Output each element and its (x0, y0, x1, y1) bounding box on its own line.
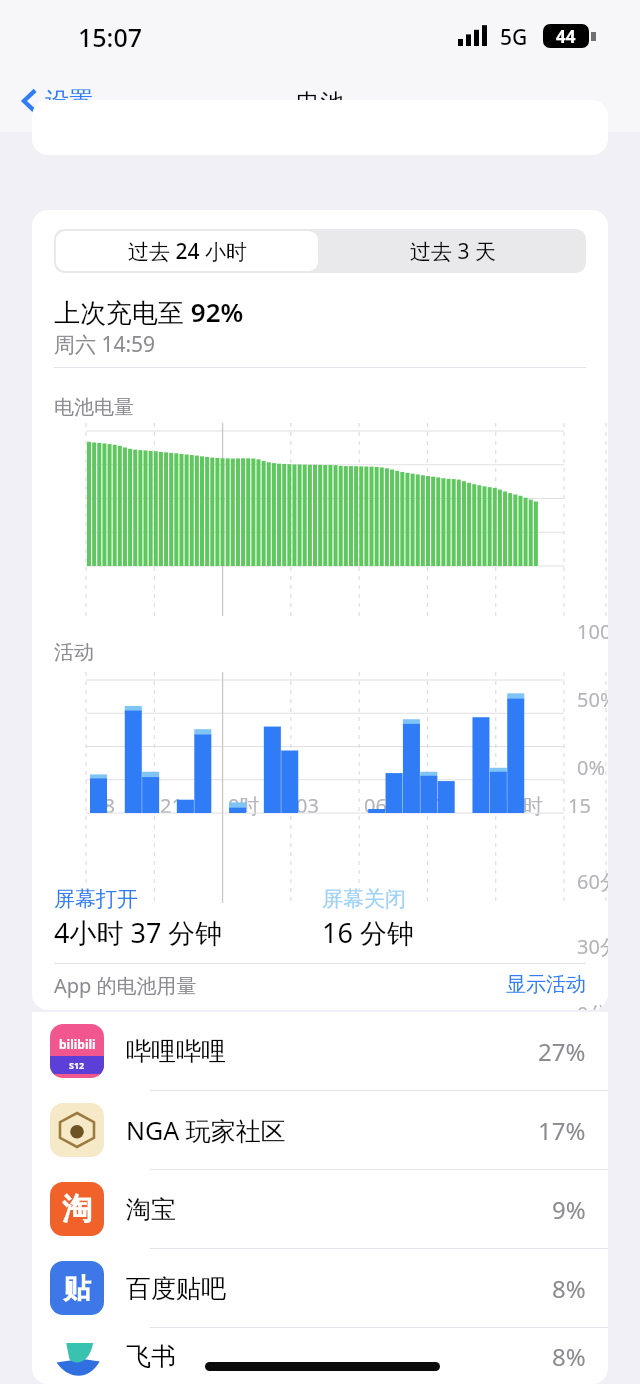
button[interactable]: 过去 24 小时 (54, 229, 320, 273)
staticText: 电池电量 (54, 395, 134, 420)
staticText: 0分钟 (577, 1000, 608, 1010)
button[interactable]: 过去 3 天 (320, 229, 586, 273)
staticText: 0时 (228, 792, 260, 819)
staticText: 活动 (54, 640, 94, 665)
staticText: NGA 玩家社区 (126, 1113, 538, 1147)
staticText: 4小时 37 分钟 (54, 914, 223, 951)
button[interactable]: bilibili (32, 1012, 608, 1090)
staticText: 设置 (45, 86, 93, 116)
staticText: S12 (69, 1059, 85, 1071)
staticText: 哔哩哔哩 (126, 1036, 538, 1067)
staticText: 18 (92, 792, 115, 819)
button[interactable]: NGA 玩家社区 (32, 1091, 608, 1169)
staticText: 8% (552, 1340, 586, 1373)
staticText: 03 (296, 792, 319, 819)
button[interactable]: 显示活动 (506, 972, 586, 997)
staticText: 15 (568, 792, 591, 819)
staticText: 09 (432, 792, 455, 819)
staticText: 电池 (296, 88, 344, 118)
staticText: 60分钟 (577, 868, 608, 895)
staticText: 27% (538, 1035, 586, 1068)
staticText: 过去 3 天 (410, 237, 496, 266)
staticText: 16 分钟 (322, 914, 414, 951)
staticText: 飞书 (126, 1341, 552, 1372)
staticText: 12时 (500, 792, 543, 819)
staticText: 44 (556, 25, 576, 48)
button[interactable]: 淘 (32, 1170, 608, 1248)
staticText: 百度贴吧 (126, 1273, 552, 1304)
staticText: 贴 (63, 1271, 91, 1306)
staticText: 屏幕关闭 (322, 886, 406, 912)
button[interactable]: 设置 (16, 80, 99, 122)
staticText: 06 (364, 792, 387, 819)
staticText: bilibili (59, 1036, 96, 1052)
staticText: 周六 14:59 (54, 330, 156, 359)
staticText: 8% (552, 1272, 586, 1305)
staticText: 淘 (62, 1190, 92, 1228)
staticText: 9% (552, 1193, 586, 1226)
staticText: 50% (577, 686, 608, 713)
staticText: 上次充电至 92% (54, 294, 244, 330)
staticText: App 的电池用量 (54, 972, 197, 999)
staticText: 屏幕打开 (54, 886, 138, 912)
staticText: 15:07 (78, 20, 143, 54)
staticText: 100% (577, 618, 608, 645)
staticText: 显示活动 (506, 972, 586, 997)
staticText: 过去 24 小时 (128, 237, 247, 266)
staticText: 21 (160, 792, 183, 819)
staticText: 30分钟 (577, 933, 608, 960)
staticText: 0% (577, 754, 606, 781)
staticText: 5G (500, 23, 528, 52)
staticText: 淘宝 (126, 1194, 552, 1225)
staticText: 17% (538, 1114, 586, 1147)
button[interactable]: 飞书 (32, 1328, 608, 1384)
button[interactable]: 贴 (32, 1249, 608, 1327)
